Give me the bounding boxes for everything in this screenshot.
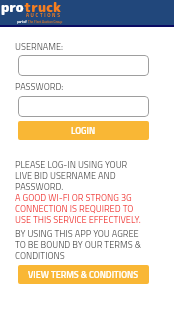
staticText: PLEASE LOG-IN USING YOUR LIVE BID USERNA… [15, 158, 141, 227]
staticText: part of [17, 19, 28, 24]
staticText: USERNAME: [15, 40, 64, 54]
staticText: AUCTIONS [26, 11, 62, 19]
staticText: VIEW TERMS & CONDITIONS [28, 268, 139, 282]
button[interactable]: VIEW TERMS & CONDITIONS [18, 265, 149, 284]
staticText: BY USING THIS APP YOU AGREE TO BE BOUND … [15, 227, 141, 263]
button[interactable]: LOGIN [18, 121, 149, 140]
staticText: PASSWORD: [15, 80, 64, 94]
staticText: LOGIN [71, 124, 96, 138]
button[interactable] [18, 96, 149, 117]
staticText: pro [1, 0, 24, 16]
staticText: truck [24, 0, 62, 16]
button[interactable] [18, 55, 149, 76]
staticText: The Fleet Auction Group [28, 19, 63, 24]
